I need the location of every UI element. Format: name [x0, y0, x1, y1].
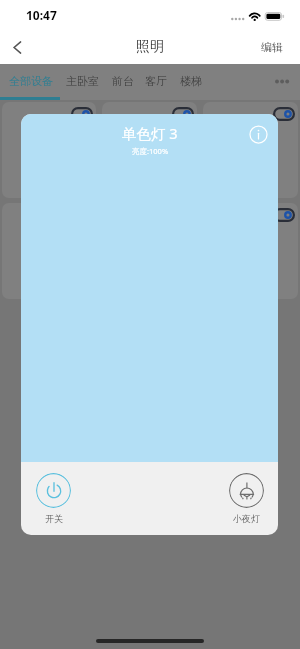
button[interactable]: More options	[275, 79, 300, 84]
staticText: 全部设备	[9, 74, 53, 88]
staticText: 亮度:100%	[132, 146, 169, 156]
staticText: 楼梯	[180, 74, 202, 88]
button[interactable]: 前台	[106, 64, 139, 100]
button[interactable]	[2, 102, 96, 198]
button[interactable]: 全部设备	[2, 64, 59, 100]
staticText: 开关	[45, 513, 63, 524]
button[interactable]: 客厅	[139, 64, 173, 100]
button[interactable]: 主卧室	[59, 64, 106, 100]
staticText: 主卧室	[66, 74, 99, 88]
button[interactable]	[2, 203, 96, 299]
button[interactable]: 编辑	[244, 33, 300, 61]
staticText: 单色灯 3	[122, 123, 178, 143]
staticText: 前台	[112, 74, 134, 88]
button[interactable]	[203, 102, 298, 198]
staticText: 10:47	[26, 7, 57, 23]
button[interactable]	[203, 203, 298, 299]
staticText: 照明	[136, 38, 164, 56]
button[interactable]: 开关	[28, 462, 79, 524]
button[interactable]: 楼梯	[173, 64, 208, 100]
button[interactable]	[102, 102, 197, 198]
staticText: 小夜灯	[233, 513, 260, 524]
button[interactable]: Back	[0, 30, 34, 64]
button[interactable]: 小夜灯	[221, 462, 272, 524]
staticText: 客厅	[145, 74, 167, 88]
button[interactable]: Device info	[249, 125, 268, 144]
staticText: 编辑	[261, 40, 283, 54]
